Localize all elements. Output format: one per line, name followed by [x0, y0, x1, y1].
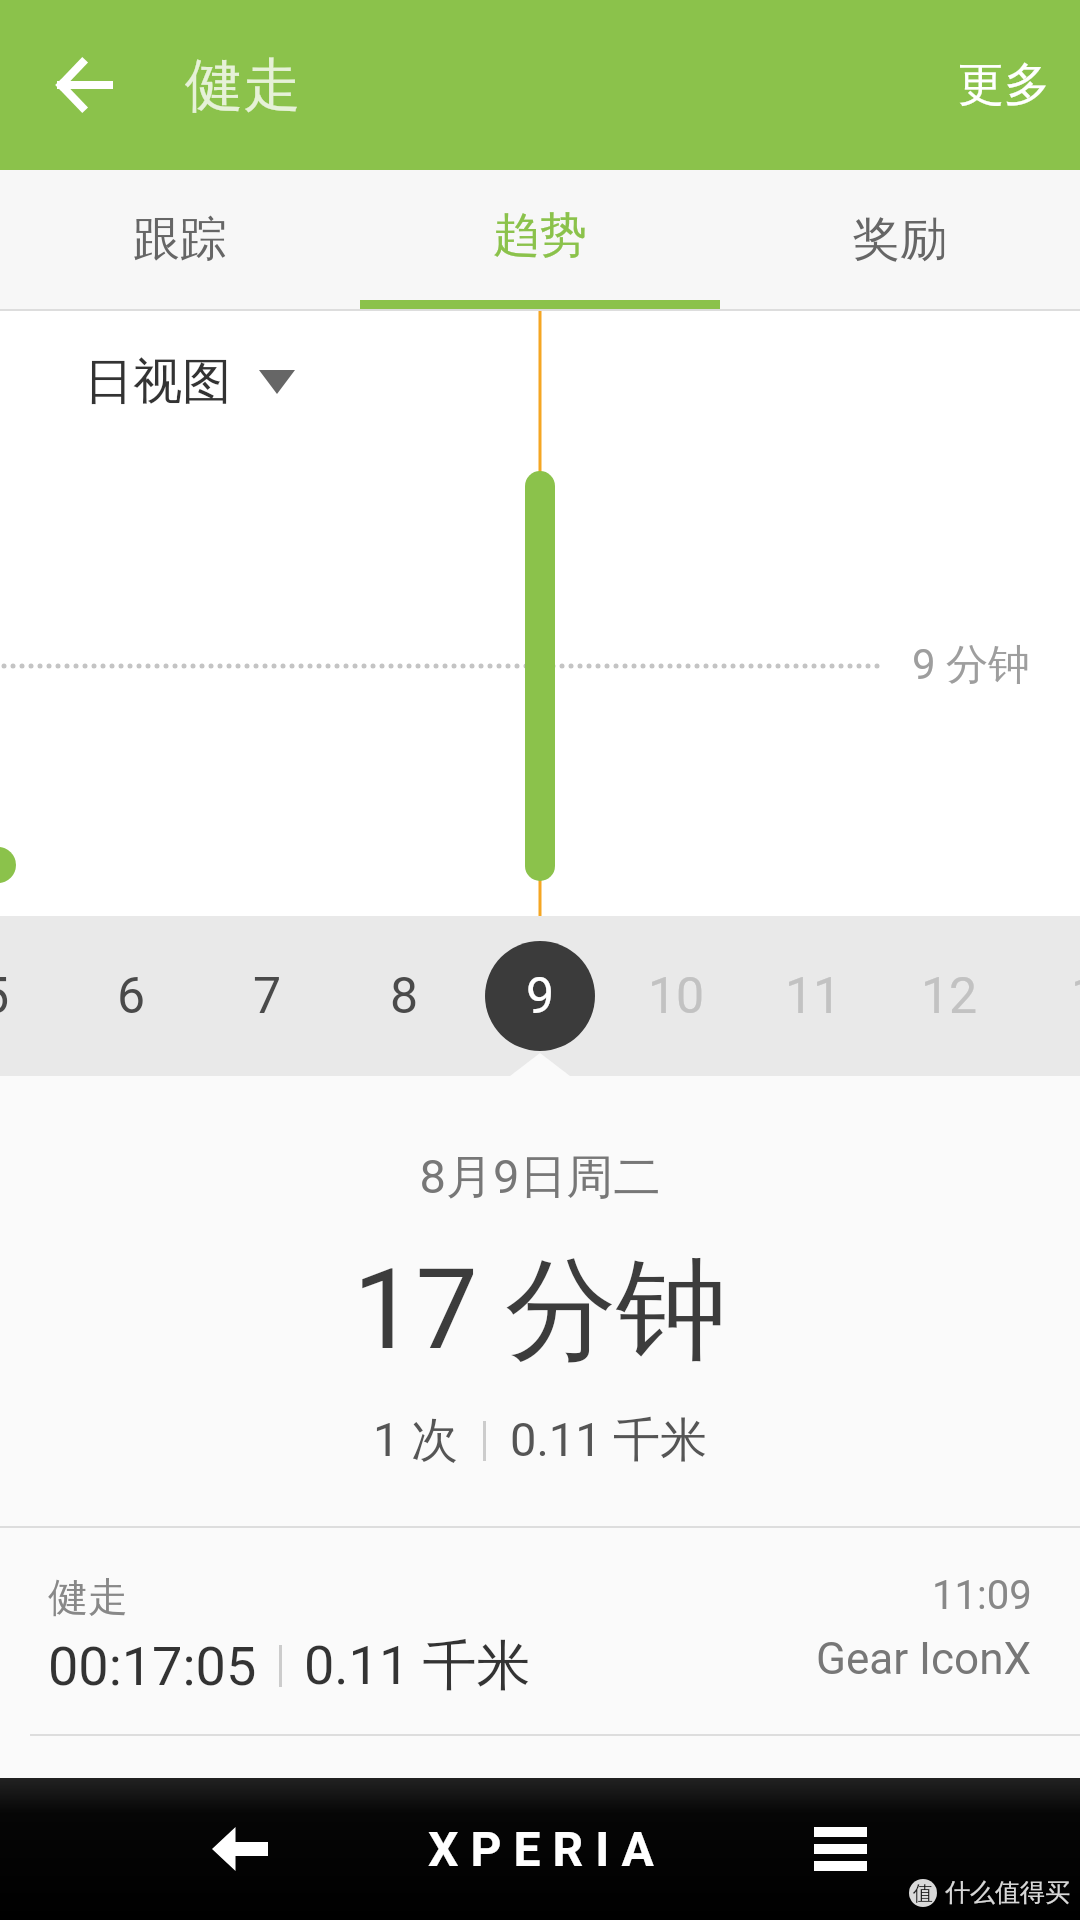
staticText: 11:09 — [932, 1572, 1032, 1619]
staticText: 11 — [785, 967, 842, 1026]
staticText: Gear IconX — [816, 1633, 1032, 1685]
staticText: 奖励 — [853, 210, 947, 269]
button[interactable]: 日视图 — [84, 351, 295, 413]
button[interactable]: 奖励 — [720, 170, 1080, 309]
button[interactable]: 更多 — [928, 36, 1080, 134]
staticText: 9 — [526, 967, 555, 1026]
staticText: 5 — [0, 967, 10, 1026]
button[interactable]: XPERIA — [428, 1821, 666, 1877]
staticText: 8月9日周二 — [0, 1148, 1080, 1207]
staticText: 6 — [117, 967, 146, 1026]
button[interactable]: 健走 — [0, 1528, 1080, 1734]
staticText: 跟踪 — [133, 210, 227, 269]
staticText: 9 分钟 — [912, 639, 1031, 692]
staticText: 什么值得买 — [945, 1877, 1070, 1908]
staticText: 0.11 千米 — [304, 1632, 531, 1700]
staticText: 1 次 — [373, 1411, 459, 1470]
button[interactable] — [185, 1794, 295, 1904]
staticText: 0.11 千米 — [510, 1411, 708, 1470]
staticText: 趋势 — [493, 206, 587, 265]
staticText: 健走 — [185, 49, 301, 122]
staticText: 7 — [253, 967, 282, 1026]
staticText: 00:17:05 — [48, 1635, 257, 1698]
button[interactable] — [30, 30, 140, 140]
staticText: 1 — [1071, 967, 1080, 1026]
staticText: 17 分钟 — [353, 1241, 728, 1381]
staticText: 值 — [913, 1881, 933, 1906]
staticText: 健走 — [48, 1572, 128, 1622]
staticText: 12 — [921, 967, 978, 1026]
staticText: 更多 — [958, 56, 1050, 114]
staticText: 10 — [648, 967, 705, 1026]
button[interactable] — [785, 1794, 895, 1904]
staticText: 日视图 — [84, 351, 231, 413]
button[interactable]: 趋势 — [360, 170, 720, 309]
staticText: XPERIA — [428, 1821, 666, 1877]
button[interactable]: 跟踪 — [0, 170, 360, 309]
staticText: 8 — [390, 967, 419, 1026]
